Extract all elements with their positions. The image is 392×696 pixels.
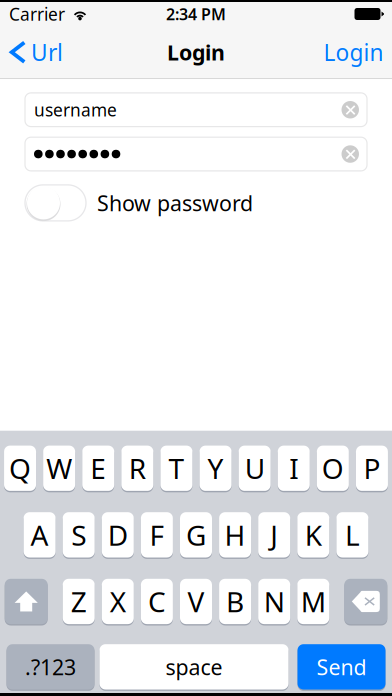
button[interactable]: W <box>43 446 75 491</box>
button[interactable]: K <box>297 512 329 557</box>
button[interactable]: Z <box>63 579 95 624</box>
staticText: Q <box>9 450 31 487</box>
staticText: F <box>149 516 164 553</box>
staticText: C <box>148 583 166 620</box>
button[interactable]: I <box>278 446 310 491</box>
button[interactable]: N <box>258 579 290 624</box>
button[interactable]: space <box>99 644 288 689</box>
button[interactable]: .?123 <box>6 644 94 689</box>
staticText: Send <box>316 653 366 681</box>
staticText: X <box>110 583 126 620</box>
button[interactable]: O <box>317 446 349 491</box>
staticText: G <box>186 516 206 553</box>
staticText: P <box>363 450 380 487</box>
button[interactable] <box>25 137 367 171</box>
button[interactable]: username <box>25 93 367 127</box>
button[interactable]: J <box>258 512 290 557</box>
staticText: Z <box>71 583 87 620</box>
button[interactable]: B <box>219 579 251 624</box>
button[interactable]: Url <box>0 26 73 78</box>
button[interactable]: U <box>239 446 271 491</box>
button[interactable]: C <box>141 579 173 624</box>
button[interactable]: Shift <box>5 579 48 624</box>
button[interactable]: S <box>63 512 95 557</box>
button[interactable]: A <box>24 512 56 557</box>
staticText: J <box>270 516 278 553</box>
button[interactable]: M <box>297 579 329 624</box>
staticText: A <box>31 516 49 553</box>
staticText: I <box>289 450 298 487</box>
button[interactable]: Send <box>297 644 385 689</box>
staticText: B <box>226 583 244 620</box>
button[interactable]: V <box>180 579 212 624</box>
button[interactable]: Q <box>4 446 36 491</box>
staticText: L <box>345 516 360 553</box>
staticText: N <box>264 583 285 620</box>
staticText: U <box>245 450 265 487</box>
button[interactable]: Delete <box>344 579 387 624</box>
staticText: Url <box>31 37 63 67</box>
button[interactable]: Show password <box>25 185 86 221</box>
staticText: E <box>90 450 106 487</box>
button[interactable]: H <box>219 512 251 557</box>
staticText: V <box>187 583 204 620</box>
staticText: Carrier <box>9 2 65 25</box>
staticText: O <box>322 450 344 487</box>
button[interactable]: P <box>356 446 388 491</box>
button[interactable]: F <box>141 512 173 557</box>
staticText: Login <box>167 38 225 66</box>
staticText: .?123 <box>25 653 76 681</box>
staticText: Login <box>323 37 383 67</box>
staticText: space <box>165 653 222 681</box>
button[interactable]: Login <box>315 26 392 78</box>
staticText: Show password <box>97 189 253 217</box>
staticText: R <box>129 450 146 487</box>
button[interactable]: D <box>102 512 134 557</box>
button[interactable]: R <box>121 446 153 491</box>
staticText: S <box>71 516 86 553</box>
button[interactable]: E <box>82 446 114 491</box>
staticText: M <box>301 583 326 620</box>
staticText: Y <box>208 450 224 487</box>
staticText: W <box>46 450 72 487</box>
button[interactable]: Y <box>200 446 232 491</box>
staticText: T <box>168 450 184 487</box>
staticText: 2:34 PM <box>166 3 226 25</box>
staticText: D <box>108 516 128 553</box>
button[interactable]: G <box>180 512 212 557</box>
staticText: K <box>305 516 322 553</box>
button[interactable]: X <box>102 579 134 624</box>
button[interactable]: L <box>336 512 368 557</box>
button[interactable]: T <box>160 446 192 491</box>
staticText: H <box>225 516 246 553</box>
staticText: username <box>34 98 117 121</box>
